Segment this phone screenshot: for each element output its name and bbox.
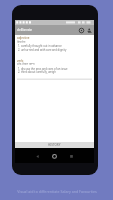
staticText: deliberate bbox=[17, 28, 33, 32]
staticText: 2. think about carefully, weigh bbox=[18, 70, 56, 74]
staticText: Visual aid to differentiate Salary and F… bbox=[17, 189, 97, 194]
staticText: HISTORY bbox=[48, 143, 61, 147]
staticText: 1. carefully thought out in advance bbox=[18, 44, 62, 48]
staticText: verb bbox=[17, 59, 24, 63]
staticText: 2. unhurried and with care and dignity bbox=[18, 48, 67, 52]
staticText: सोच-विचार करना bbox=[17, 62, 35, 66]
staticText: विचारित bbox=[17, 40, 26, 44]
staticText: adjective bbox=[17, 36, 30, 40]
button[interactable]: Add to favourites bbox=[85, 25, 93, 35]
button[interactable]: HISTORY bbox=[15, 142, 94, 148]
staticText: 1. discuss the pros and cons of an issue bbox=[18, 67, 68, 71]
button[interactable]: Pronounce bbox=[77, 25, 85, 35]
